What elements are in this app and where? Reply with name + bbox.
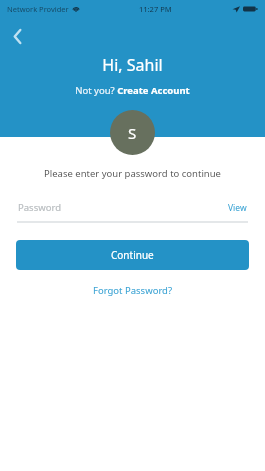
staticText: Hi, Sahil [102, 54, 163, 76]
staticText: Password [18, 201, 61, 214]
staticText: Please enter your password to continue [0, 167, 265, 180]
button[interactable]: View [228, 202, 247, 214]
staticText: Network Provider [7, 4, 69, 14]
staticText: Not you? Create Account [75, 84, 190, 97]
button[interactable]: Back [3, 22, 31, 50]
button[interactable]: Not you? Create Account [73, 83, 192, 98]
button[interactable]: Continue [16, 240, 249, 270]
staticText: View [228, 202, 247, 214]
button[interactable]: Password [18, 201, 247, 214]
staticText: S [128, 123, 137, 143]
staticText: Forgot Password? [93, 284, 173, 297]
button[interactable]: Forgot Password? [89, 280, 177, 301]
staticText: 11:27 PM [139, 4, 172, 14]
staticText: Continue [111, 248, 154, 262]
